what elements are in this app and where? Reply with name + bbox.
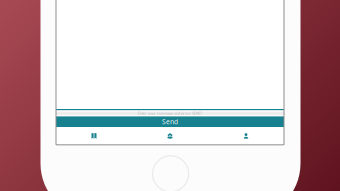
staticText: Send	[162, 117, 178, 126]
button[interactable]: Groups	[132, 127, 208, 145]
staticText: Enter your message and press SEND	[138, 111, 202, 116]
button[interactable]: Journal	[56, 127, 132, 145]
button[interactable]: Send	[56, 116, 284, 127]
button[interactable]: Profile	[208, 127, 284, 145]
